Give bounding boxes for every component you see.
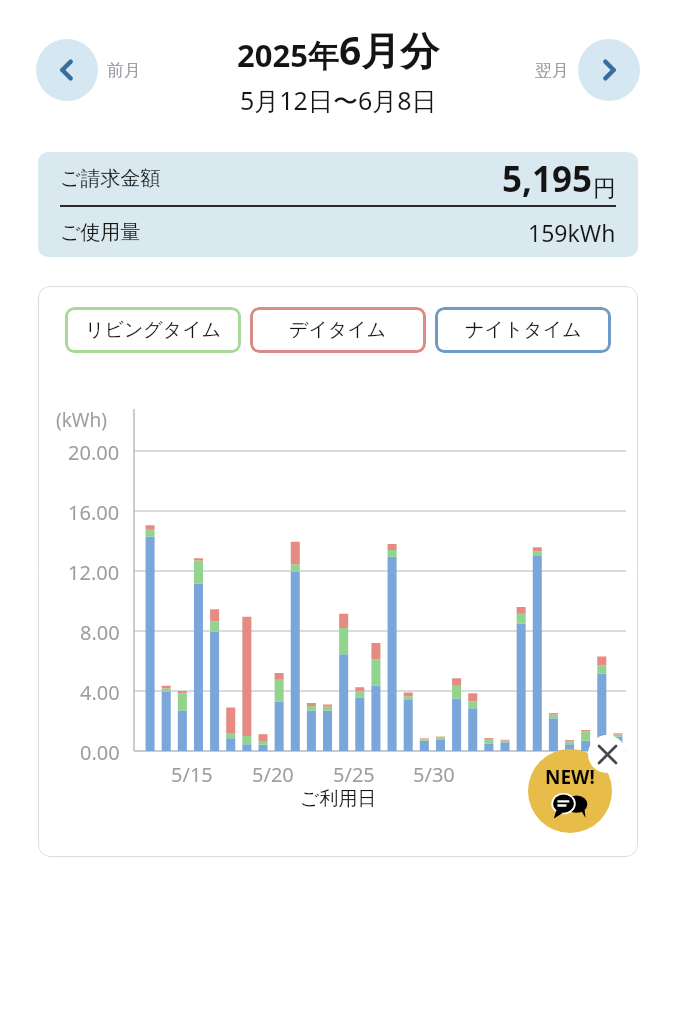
staticText: 16.00 <box>68 499 120 526</box>
staticText: 5/15 <box>171 761 213 788</box>
staticText: 4.00 <box>80 679 120 706</box>
staticText: ナイトタイム <box>465 318 582 342</box>
button[interactable]: デイタイム <box>250 307 426 353</box>
staticText: 円 <box>593 174 616 203</box>
staticText: 5/30 <box>413 761 455 788</box>
staticText: デイタイム <box>289 318 387 342</box>
staticText: 5,195 <box>502 155 593 203</box>
staticText: ご利用日 <box>300 787 377 811</box>
staticText: 5/20 <box>252 761 294 788</box>
button[interactable]: 翌月 <box>535 39 640 101</box>
staticText: 前月 <box>107 60 141 81</box>
staticText: NEW! <box>545 764 595 790</box>
staticText: リビングタイム <box>85 318 222 342</box>
staticText: 5/25 <box>333 761 375 788</box>
button[interactable]: ご請求金額 <box>38 152 638 257</box>
staticText: 0.00 <box>80 739 120 766</box>
staticText: 8.00 <box>80 619 120 646</box>
staticText: 翌月 <box>535 60 569 81</box>
button[interactable]: リビングタイム <box>65 307 241 353</box>
staticText: ご請求金額 <box>60 166 161 191</box>
button[interactable]: Close <box>588 735 626 773</box>
staticText: 2025年 <box>237 34 339 76</box>
button[interactable]: 前月 <box>36 39 141 101</box>
button[interactable]: ナイトタイム <box>435 307 611 353</box>
button[interactable]: NEW chat <box>528 749 612 833</box>
staticText: 159kWh <box>528 217 616 248</box>
staticText: 6月分 <box>339 23 440 76</box>
staticText: 5月12日〜6月8日 <box>240 83 437 117</box>
staticText: 12.00 <box>68 559 120 586</box>
staticText: 20.00 <box>68 439 120 466</box>
staticText: ご使用量 <box>60 220 141 245</box>
staticText: (kWh) <box>56 407 107 433</box>
